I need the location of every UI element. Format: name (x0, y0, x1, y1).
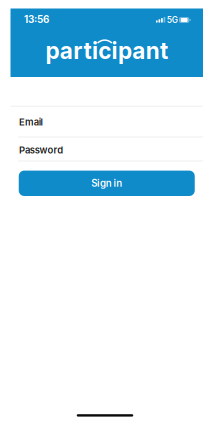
button[interactable]: Password (10, 138, 203, 161)
staticText: Email (19, 116, 43, 128)
staticText: Sign in (91, 177, 122, 189)
staticText: participant (45, 37, 168, 64)
button[interactable]: Sign in (19, 171, 195, 196)
staticText: 5G (167, 15, 178, 25)
button[interactable]: Email (10, 107, 203, 137)
staticText: Password (19, 144, 63, 156)
staticText: 13:56 (24, 13, 49, 25)
